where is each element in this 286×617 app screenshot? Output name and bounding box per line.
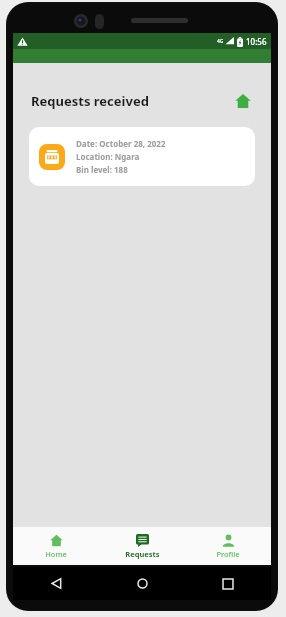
staticText: Requests received xyxy=(31,92,149,110)
staticText: 4G xyxy=(217,38,224,45)
button[interactable]: Profile xyxy=(185,527,271,565)
button[interactable]: Back xyxy=(13,567,99,600)
staticText: 10:56 xyxy=(246,36,267,47)
button[interactable]: Home xyxy=(233,91,253,111)
staticText: Location: Ngara xyxy=(76,151,140,162)
button[interactable]: Home xyxy=(99,567,185,600)
staticText: Bin level: 188 xyxy=(76,164,128,175)
staticText: Date: October 28, 2022 xyxy=(76,138,166,149)
staticText: Home xyxy=(45,549,67,559)
button[interactable]: Date: October 28, 2022 xyxy=(29,127,255,186)
button[interactable]: Requests xyxy=(99,527,185,565)
button[interactable]: Home xyxy=(13,527,99,565)
staticText: Profile xyxy=(216,549,240,559)
button[interactable]: Recent apps xyxy=(185,567,271,600)
staticText: Requests xyxy=(125,549,160,559)
